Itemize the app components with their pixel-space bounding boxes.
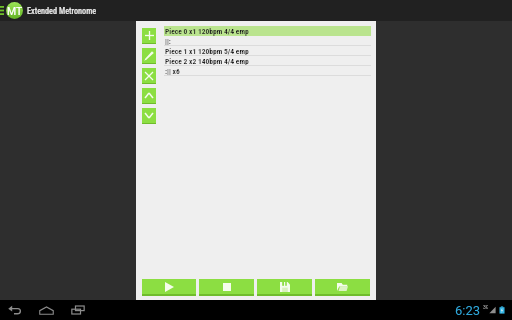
staticText: MT <box>7 5 23 17</box>
button[interactable]: Move down <box>142 108 156 124</box>
button[interactable]: ||: <box>164 36 371 46</box>
button[interactable]: Edit <box>142 48 156 64</box>
button[interactable]: Piece 0 x1 120bpm 4/4 emp <box>164 26 371 36</box>
staticText: :|| x6 <box>165 67 180 76</box>
button[interactable]: Menu <box>0 0 6 21</box>
button[interactable]: Piece 1 x1 120bpm 5/4 emp <box>164 46 371 56</box>
button[interactable]: Piece 2 x2 140bpm 4/4 emp <box>164 56 371 66</box>
staticText: Extended Metronome <box>27 6 97 16</box>
staticText: 6:23 <box>455 303 481 318</box>
button[interactable]: Recent apps <box>69 300 87 320</box>
button[interactable]: :|| x6 <box>164 66 371 76</box>
staticText: Piece 1 x1 120bpm 5/4 emp <box>165 47 249 56</box>
button[interactable]: Play <box>142 279 196 296</box>
staticText: 3G <box>483 304 488 310</box>
button[interactable]: Delete <box>142 68 156 84</box>
button[interactable]: Stop <box>199 279 254 296</box>
staticText: Piece 0 x1 120bpm 4/4 emp <box>165 27 249 36</box>
button[interactable]: Move up <box>142 88 156 104</box>
button[interactable]: Back <box>5 300 23 320</box>
staticText: ||: <box>165 37 171 46</box>
button[interactable]: Home <box>37 300 55 320</box>
button[interactable]: Open file <box>315 279 370 296</box>
button[interactable]: Save <box>257 279 312 296</box>
staticText: Piece 2 x2 140bpm 4/4 emp <box>165 57 249 66</box>
button[interactable]: Add <box>142 28 156 44</box>
